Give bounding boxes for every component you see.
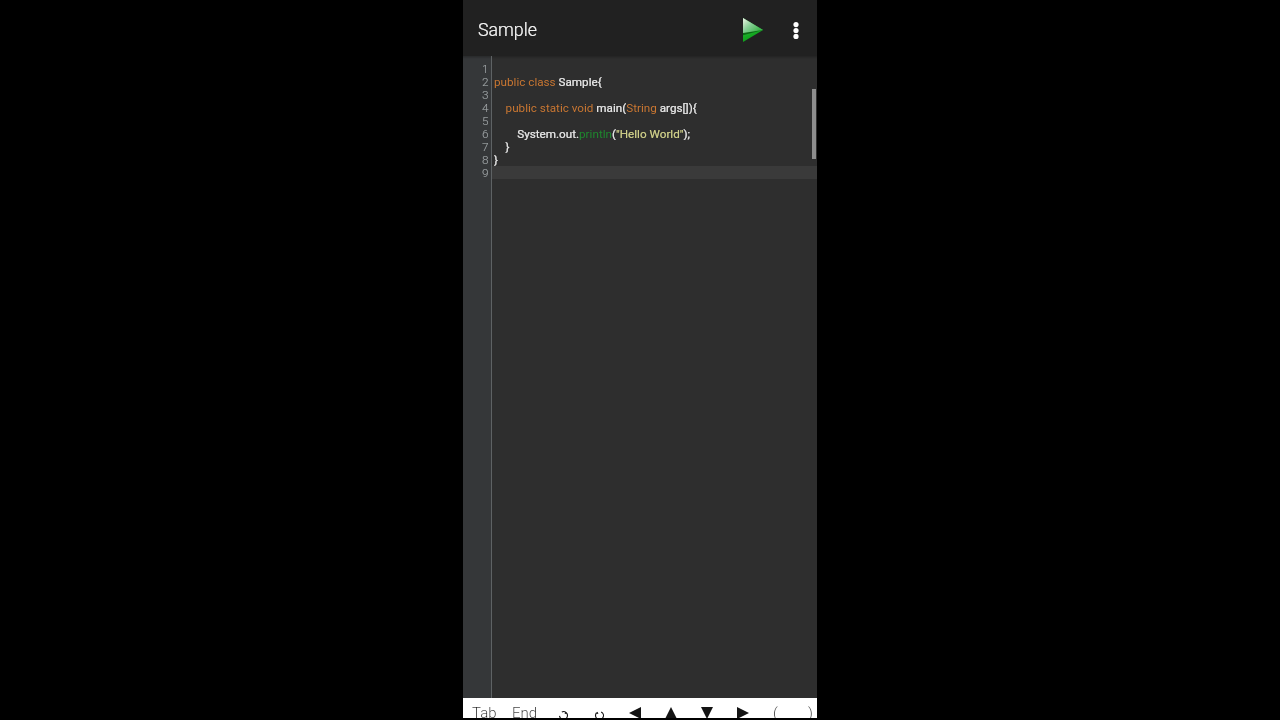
staticText: 2 (482, 75, 489, 88)
staticText: 3 (482, 88, 489, 101)
button[interactable]: Tab (463, 703, 505, 718)
button[interactable]: Redo (581, 703, 617, 718)
staticText: Sample (478, 19, 537, 40)
button[interactable]: Left (617, 703, 653, 718)
staticText: ( (773, 704, 778, 718)
staticText: 8 (482, 153, 489, 166)
staticText: 5 (482, 114, 489, 127)
staticText: End (512, 704, 538, 718)
staticText: Tab (472, 704, 497, 718)
button[interactable]: Run (731, 8, 775, 52)
button[interactable]: Undo (545, 703, 581, 718)
staticText: 7 (482, 140, 489, 153)
button[interactable]: Right (725, 703, 761, 718)
button[interactable]: More options (775, 9, 817, 51)
staticText: public static void main(String args[]){ (494, 101, 697, 114)
staticText: ) (808, 704, 813, 718)
button[interactable]: Up (653, 703, 689, 718)
button[interactable]: Down (689, 703, 725, 718)
button[interactable]: End (505, 703, 545, 718)
button[interactable]: Open paren (761, 703, 797, 718)
staticText: } (494, 153, 498, 166)
button[interactable]: Close paren (797, 703, 817, 718)
staticText: 6 (482, 127, 489, 140)
staticText: 4 (482, 101, 489, 114)
staticText: System.out.println("Hello World"); (494, 127, 691, 140)
staticText: } (494, 140, 510, 153)
staticText: public class Sample{ (494, 75, 602, 88)
staticText: 9 (482, 166, 489, 179)
staticText: 1 (482, 62, 489, 75)
button[interactable]: Code editor (463, 56, 817, 698)
